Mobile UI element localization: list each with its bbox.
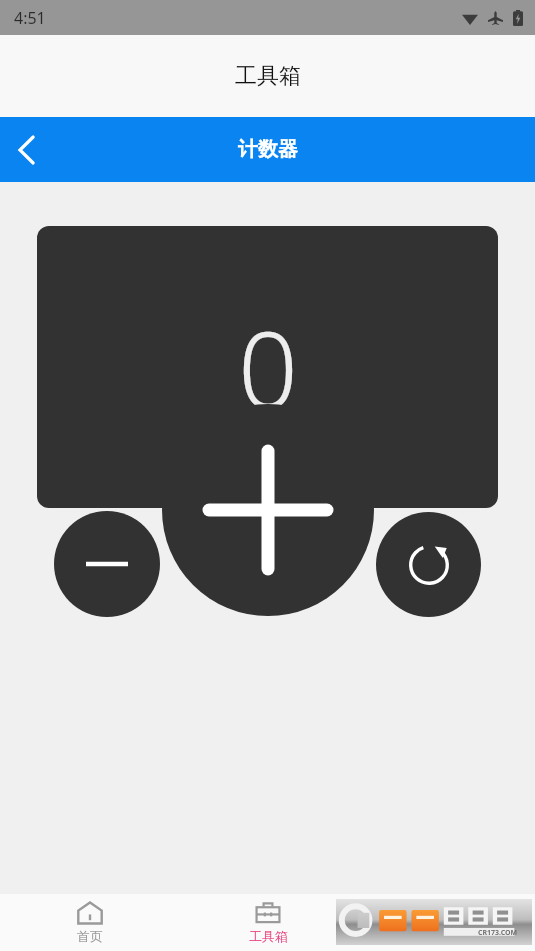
- staticText: 工具箱: [249, 928, 288, 944]
- button[interactable]: Back: [0, 123, 54, 177]
- staticText: 工具箱: [235, 62, 301, 90]
- staticText: 4:51: [14, 7, 46, 29]
- button[interactable]: 首页: [0, 894, 179, 951]
- button[interactable]: 我的: [357, 894, 535, 951]
- staticText: 首页: [77, 928, 103, 944]
- button[interactable]: Decrease: [54, 511, 160, 617]
- staticText: 0: [238, 296, 298, 439]
- button[interactable]: Increase: [162, 404, 374, 616]
- staticText: CR173.COM: [478, 928, 518, 938]
- button[interactable]: Reset: [376, 512, 481, 617]
- staticText: 计数器: [238, 137, 298, 162]
- button[interactable]: 工具箱: [179, 894, 357, 951]
- staticText: 我的: [433, 928, 459, 944]
- button[interactable]: 0: [37, 226, 498, 508]
